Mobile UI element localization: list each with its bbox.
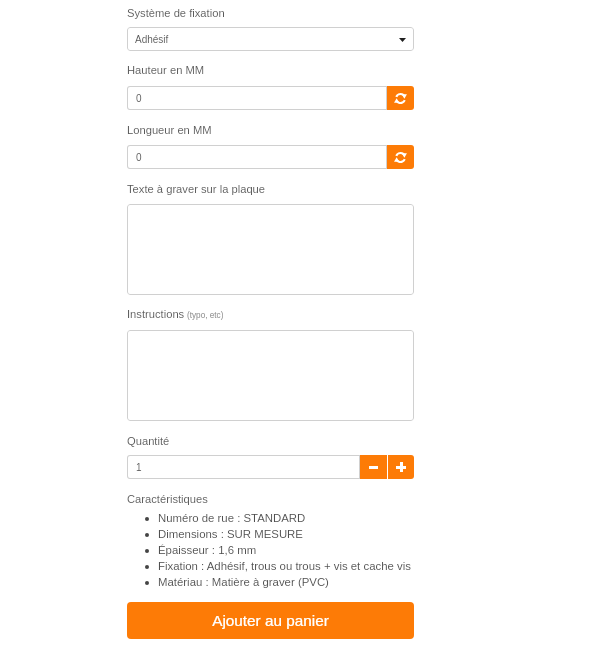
button[interactable]: Texte à graver sur la plaque xyxy=(127,204,414,295)
staticText: Hauteur en MM xyxy=(127,64,205,77)
staticText: Adhésif xyxy=(135,34,169,45)
button[interactable]: Recalculer xyxy=(387,86,414,110)
staticText: Système de fixation xyxy=(127,7,225,20)
staticText: Quantité xyxy=(127,435,170,448)
staticText: Ajouter au panier xyxy=(212,612,329,629)
staticText: Texte à graver sur la plaque xyxy=(127,183,266,196)
staticText: Dimensions : SUR MESURE xyxy=(158,528,303,541)
button[interactable]: 0 xyxy=(127,145,387,169)
button[interactable]: Diminuer la quantité xyxy=(360,455,387,479)
staticText: Épaisseur : 1,6 mm xyxy=(158,544,257,557)
staticText: Instructions xyxy=(127,308,185,321)
staticText: 0 xyxy=(136,93,142,104)
button[interactable]: Recalculer xyxy=(387,145,414,169)
staticText: 0 xyxy=(136,152,142,163)
button[interactable]: Ajouter au panier xyxy=(127,602,414,639)
staticText: Fixation : Adhésif, trous ou trous + vis… xyxy=(158,560,411,573)
button[interactable]: 0 xyxy=(127,86,387,110)
button[interactable]: Augmenter la quantité xyxy=(388,455,414,479)
button[interactable]: Instructions xyxy=(127,330,414,421)
button[interactable]: 1 xyxy=(127,455,360,479)
staticText: Caractéristiques xyxy=(127,493,208,506)
staticText: (typo, etc) xyxy=(187,311,224,320)
staticText: 1 xyxy=(136,462,142,473)
staticText: Longueur en MM xyxy=(127,124,212,137)
staticText: Matériau : Matière à graver (PVC) xyxy=(158,576,329,589)
button[interactable]: Adhésif xyxy=(127,27,414,51)
staticText: Numéro de rue : STANDARD xyxy=(158,512,306,525)
